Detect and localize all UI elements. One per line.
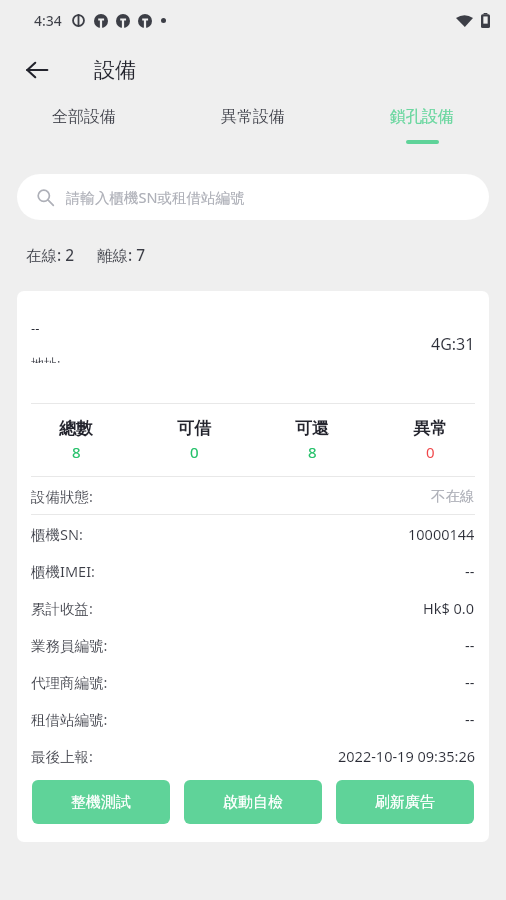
button[interactable]: 全部設備 [0, 100, 168, 156]
staticText: 設備狀態: [31, 486, 93, 506]
staticText: 異常設備 [221, 107, 285, 127]
staticText: 請輸入櫃機SN或租借站編號 [66, 187, 245, 207]
staticText: 異常 [413, 418, 447, 439]
staticText: Hk$ 0.0 [423, 598, 475, 618]
button[interactable]: 異常設備 [168, 100, 337, 156]
staticText: 櫃機SN: [31, 524, 83, 544]
staticText: -- [465, 709, 475, 729]
staticText: -- [465, 635, 475, 655]
button[interactable]: 整機測試 [32, 780, 170, 824]
staticText: 業務員編號: [31, 635, 108, 655]
staticText: 2022-10-19 09:35:26 [338, 746, 475, 766]
staticText: 離線: 7 [97, 244, 146, 265]
staticText: 鎖孔設備 [390, 107, 454, 127]
staticText: 4G:31 [431, 333, 475, 355]
staticText: -- [465, 672, 475, 692]
staticText: 0 [426, 442, 435, 462]
staticText: 地址: -- [31, 354, 73, 363]
button[interactable]: 啟動自檢 [184, 780, 322, 824]
staticText: -- [465, 561, 475, 581]
staticText: 總數 [59, 418, 93, 439]
staticText: 設備 [94, 57, 136, 83]
staticText: -- [31, 319, 40, 337]
staticText: 最後上報: [31, 746, 93, 766]
button[interactable]: -- [17, 291, 489, 842]
staticText: 整機測試 [71, 793, 131, 812]
staticText: 不在線 [431, 487, 475, 505]
staticText: 代理商編號: [31, 672, 108, 692]
staticText: 0 [190, 442, 199, 462]
staticText: 刷新廣告 [375, 793, 435, 812]
staticText: 累計收益: [31, 598, 93, 618]
button[interactable]: 刷新廣告 [336, 780, 474, 824]
button[interactable]: 請輸入櫃機SN或租借站編號 [17, 174, 489, 220]
staticText: 8 [308, 442, 317, 462]
staticText: 8 [72, 442, 81, 462]
staticText: 10000144 [408, 524, 475, 544]
staticText: 全部設備 [52, 107, 116, 127]
staticText: 櫃機IMEI: [31, 561, 95, 581]
button[interactable]: 鎖孔設備 [337, 100, 506, 156]
staticText: 可借 [177, 418, 211, 439]
button[interactable]: Back [14, 47, 60, 93]
staticText: 租借站編號: [31, 709, 108, 729]
staticText: 在線: 2 [26, 244, 75, 265]
staticText: 啟動自檢 [223, 793, 283, 812]
staticText: 可還 [295, 418, 329, 439]
staticText: 4:34 [34, 11, 62, 30]
